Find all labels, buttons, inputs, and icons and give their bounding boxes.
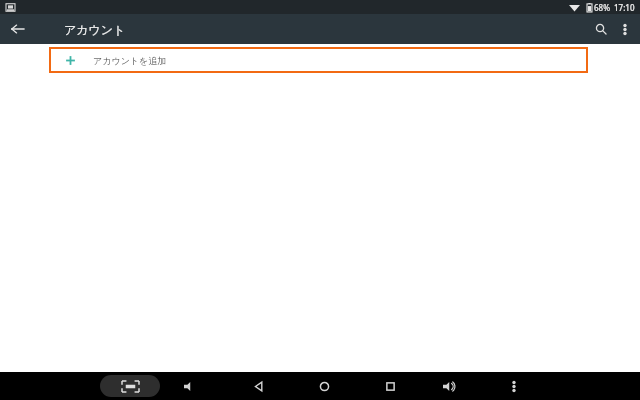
button[interactable]: Back — [247, 375, 269, 397]
button[interactable]: Back — [5, 16, 31, 42]
staticText: 68% — [594, 2, 610, 13]
button[interactable]: Search — [588, 16, 614, 42]
button[interactable]: Volume down — [179, 375, 201, 397]
button[interactable]: アカウントを追加 — [49, 47, 588, 73]
staticText: アカウント — [64, 22, 126, 37]
button[interactable]: More options — [503, 375, 525, 397]
button[interactable]: Home — [313, 375, 335, 397]
button[interactable]: More options — [614, 18, 636, 40]
staticText: 17:10 — [614, 2, 635, 13]
button[interactable]: Volume up — [438, 375, 460, 397]
button[interactable]: Recent apps — [379, 375, 401, 397]
button[interactable]: Resize screen — [100, 375, 160, 397]
staticText: アカウントを追加 — [93, 55, 167, 66]
